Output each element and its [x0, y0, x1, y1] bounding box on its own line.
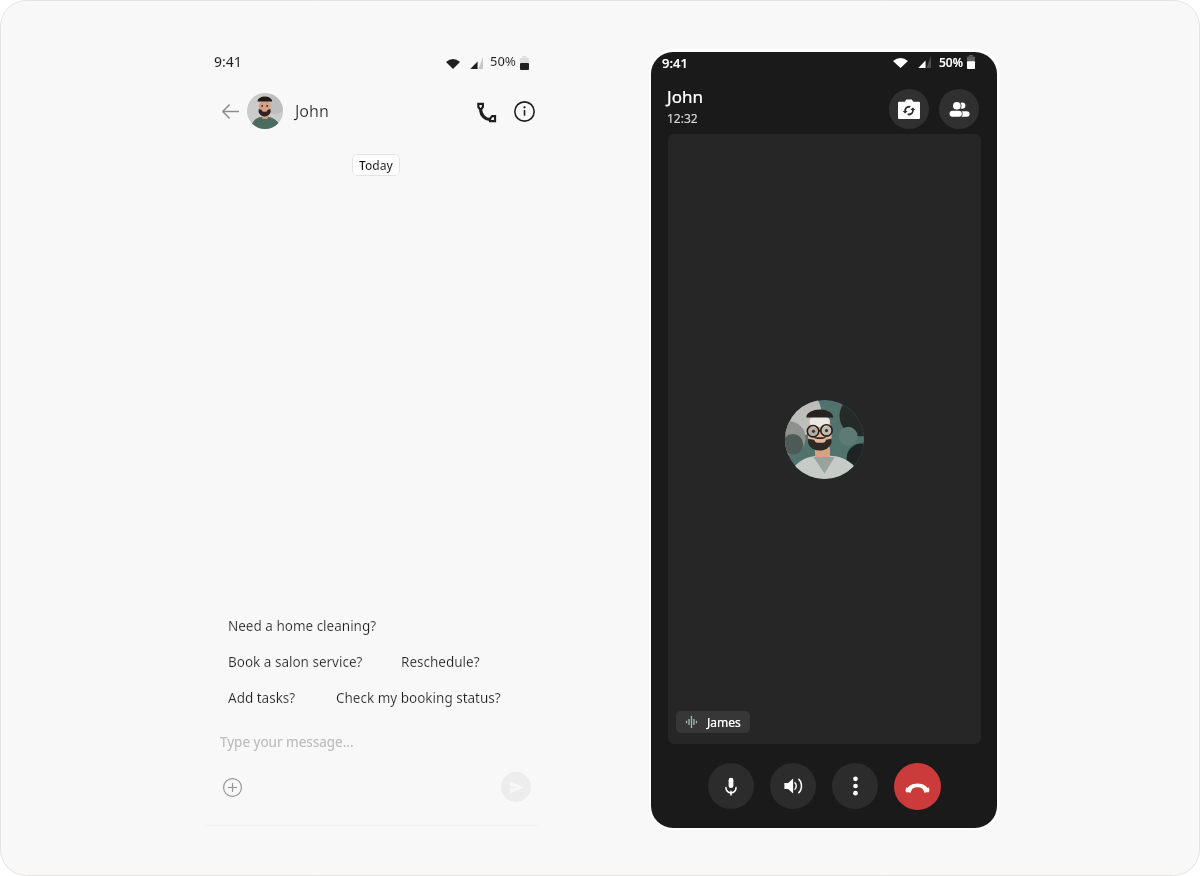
- button[interactable]: Need a home cleaning?: [228, 617, 377, 635]
- staticText: 50%: [939, 54, 963, 70]
- button[interactable]: Mute: [708, 763, 754, 809]
- staticText: Type your message...: [220, 733, 354, 751]
- button[interactable]: Info: [509, 96, 539, 126]
- staticText: 12:32: [667, 110, 698, 126]
- button[interactable]: Add tasks?: [228, 689, 296, 707]
- button[interactable]: Participants: [939, 89, 979, 129]
- staticText: 50%: [490, 52, 516, 70]
- staticText: 9:41: [662, 54, 688, 72]
- staticText: Book a salon service?: [228, 653, 363, 671]
- staticText: James: [707, 714, 741, 730]
- button[interactable]: Send: [501, 772, 531, 802]
- button[interactable]: Check my booking status?: [336, 689, 501, 707]
- button[interactable]: John: [247, 93, 329, 129]
- staticText: Today: [359, 157, 393, 173]
- button[interactable]: Speaker: [770, 763, 816, 809]
- staticText: Reschedule?: [401, 653, 480, 671]
- button[interactable]: Reschedule?: [401, 653, 480, 671]
- button[interactable]: Book a salon service?: [228, 653, 363, 671]
- button[interactable]: Add attachment: [220, 775, 244, 799]
- button[interactable]: James: [676, 711, 750, 733]
- button[interactable]: Today: [352, 154, 400, 176]
- staticText: Add tasks?: [228, 689, 296, 707]
- button[interactable]: End call: [894, 763, 941, 810]
- staticText: Need a home cleaning?: [228, 617, 377, 635]
- staticText: John: [295, 100, 329, 122]
- staticText: Check my booking status?: [336, 689, 501, 707]
- button[interactable]: More options: [832, 763, 878, 809]
- staticText: John: [667, 85, 703, 108]
- button[interactable]: Flip camera: [889, 89, 929, 129]
- button[interactable]: Call: [471, 97, 501, 127]
- button[interactable]: Back: [216, 97, 244, 125]
- staticText: 9:41: [214, 52, 242, 71]
